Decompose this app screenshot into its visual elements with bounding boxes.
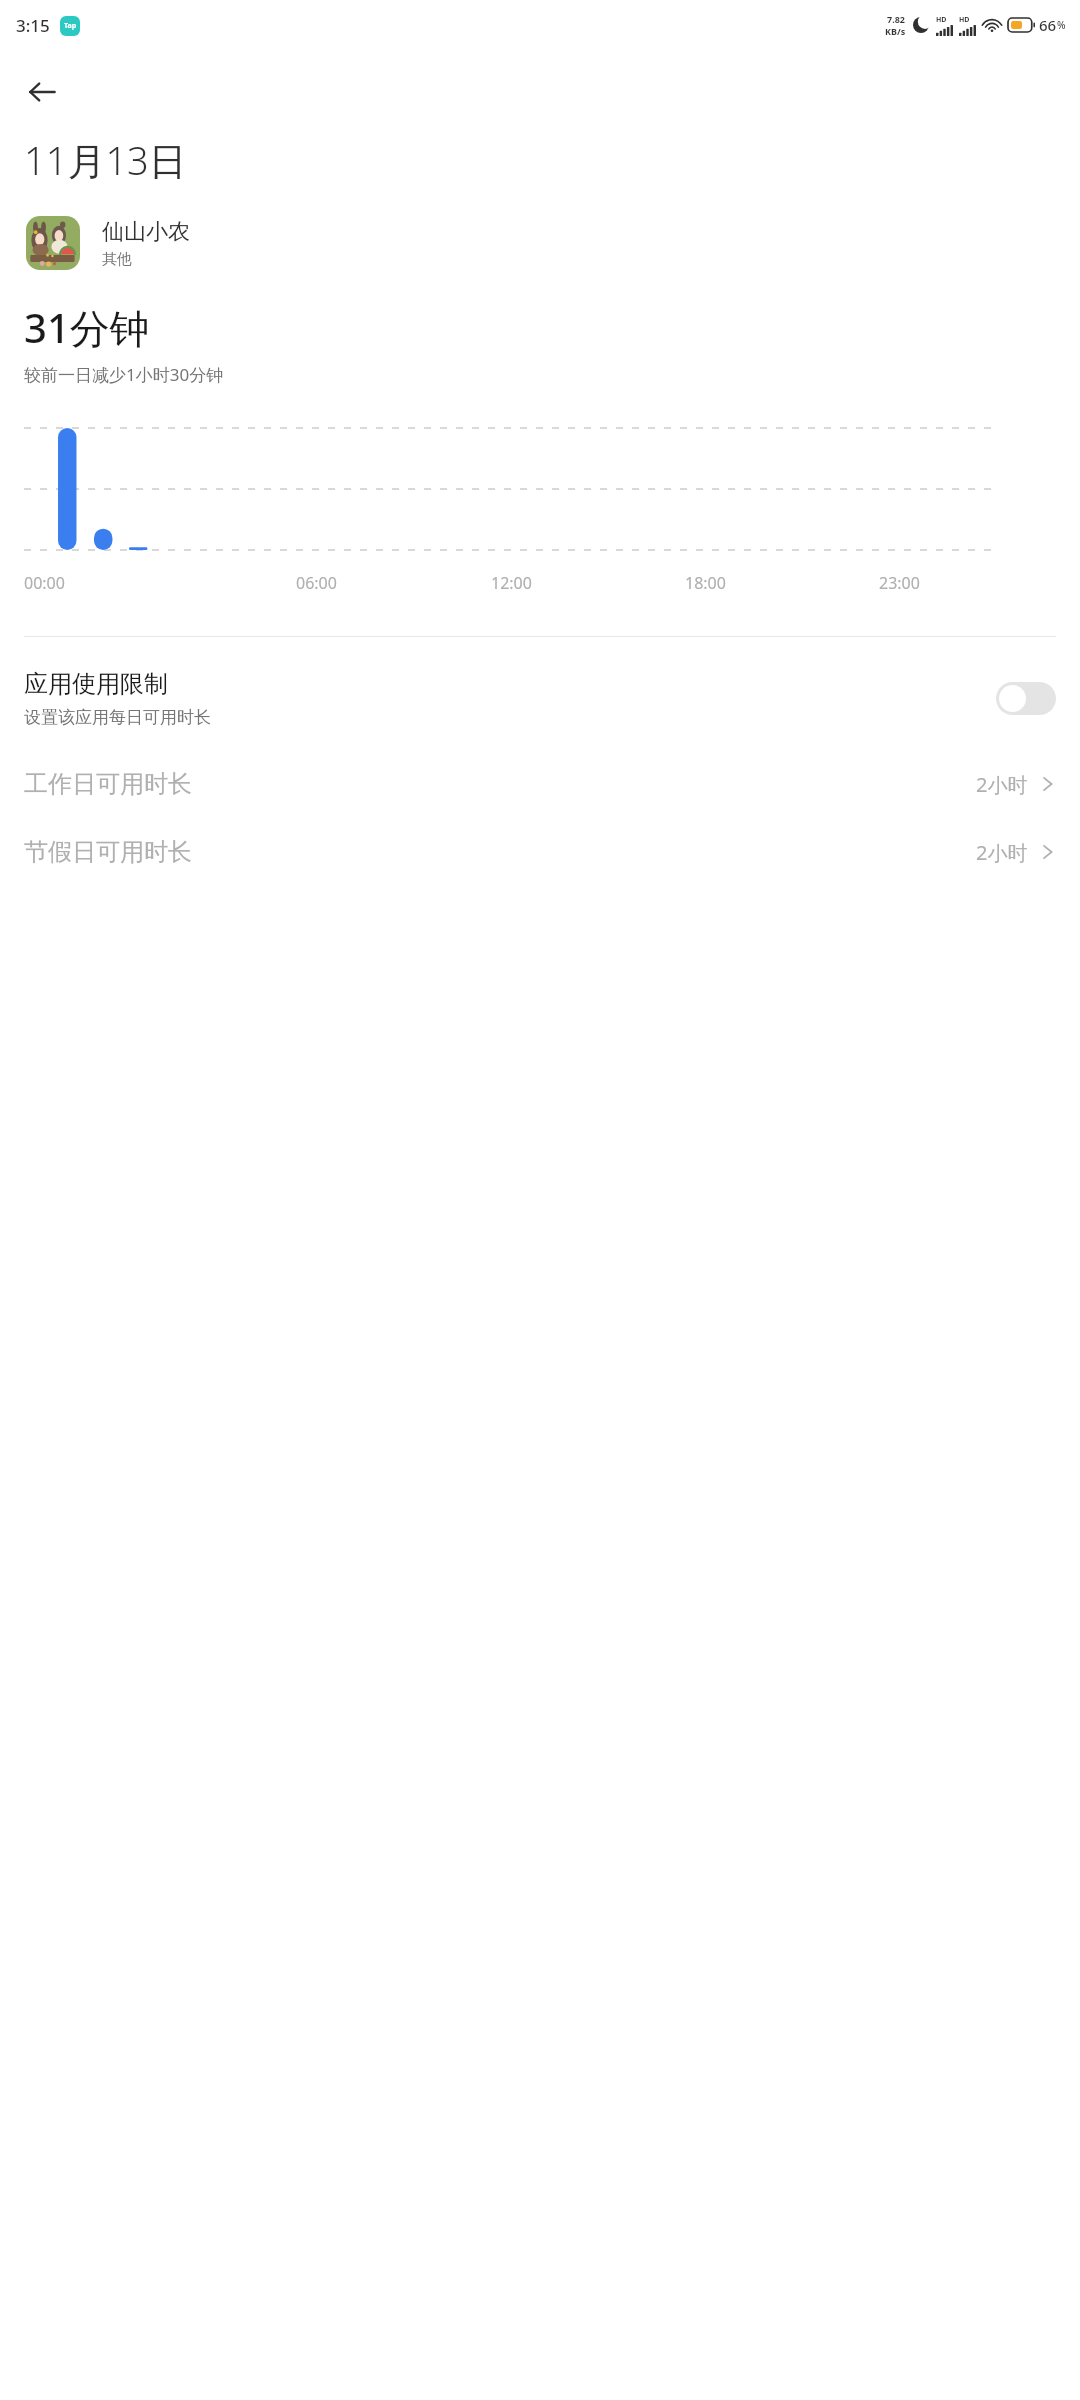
button[interactable]: 应用使用限制开关 bbox=[996, 682, 1056, 715]
staticText: 工作日可用时长 bbox=[24, 769, 976, 799]
button[interactable]: 仙山小农 bbox=[0, 212, 1080, 274]
staticText: 31分钟 bbox=[24, 300, 150, 355]
button[interactable]: 工作日可用时长 bbox=[0, 750, 1080, 818]
staticText: 00:00 bbox=[24, 572, 65, 594]
staticText: KB/s bbox=[885, 25, 906, 37]
staticText: 3:15 bbox=[16, 14, 50, 37]
staticText: 18:00 bbox=[685, 572, 726, 594]
staticText: 66 bbox=[1039, 15, 1057, 35]
staticText: 12:00 bbox=[491, 572, 532, 594]
staticText: 较前一日减少1小时30分钟 bbox=[24, 363, 224, 386]
staticText: 其他 bbox=[102, 250, 132, 269]
staticText: 节假日可用时长 bbox=[24, 837, 976, 867]
staticText: 2小时 bbox=[976, 771, 1028, 798]
staticText: HD bbox=[959, 15, 970, 25]
staticText: 11月13日 bbox=[24, 134, 187, 186]
staticText: 设置该应用每日可用时长 bbox=[24, 707, 211, 728]
staticText: Tap bbox=[64, 21, 77, 31]
staticText: 23:00 bbox=[879, 572, 920, 594]
staticText: 应用使用限制 bbox=[24, 669, 168, 699]
button[interactable]: 应用使用限制 bbox=[0, 659, 1080, 738]
button[interactable]: 返回 bbox=[14, 64, 70, 120]
staticText: % bbox=[1057, 18, 1066, 32]
staticText: 06:00 bbox=[296, 572, 337, 594]
button[interactable]: 节假日可用时长 bbox=[0, 818, 1080, 886]
staticText: 7.82 bbox=[887, 13, 905, 25]
staticText: 2小时 bbox=[976, 839, 1028, 866]
staticText: HD bbox=[936, 15, 947, 25]
staticText: 仙山小农 bbox=[102, 218, 190, 246]
